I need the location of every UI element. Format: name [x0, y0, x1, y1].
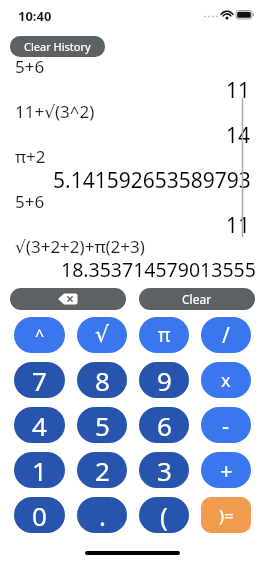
staticText: 0 [32, 498, 47, 533]
staticText: + [220, 455, 233, 485]
button[interactable]: 5 [77, 407, 127, 443]
button[interactable]: ( [139, 497, 189, 533]
button[interactable]: ^ [14, 317, 65, 353]
staticText: ( [160, 498, 168, 533]
button[interactable]: 5+6 [0, 55, 265, 100]
staticText: - [222, 410, 230, 440]
staticText: π [158, 322, 171, 348]
button[interactable]: 11+√(3^2) [0, 100, 265, 145]
button[interactable]: 0 [14, 497, 65, 533]
staticText: x [221, 368, 231, 393]
button[interactable]: 3 [139, 452, 189, 488]
staticText: Clear History [24, 39, 91, 54]
button[interactable]: 8 [77, 362, 127, 398]
button[interactable] [10, 288, 126, 310]
staticText: 1 [32, 453, 47, 488]
staticText: 9 [157, 363, 172, 398]
button[interactable]: . [77, 497, 127, 533]
button[interactable]: 5+6 [0, 190, 265, 235]
button[interactable]: )= [201, 497, 251, 533]
button[interactable]: 4 [14, 407, 65, 443]
button[interactable]: π+2 [0, 145, 265, 190]
staticText: √ [95, 322, 110, 348]
staticText: π+2 [15, 145, 46, 166]
button[interactable]: √ [77, 317, 127, 353]
staticText: 11+√(3^2) [15, 100, 95, 121]
staticText: Clear [182, 291, 212, 307]
button[interactable]: Clear [139, 288, 255, 310]
staticText: 11 [226, 76, 251, 100]
staticText: 8 [95, 363, 110, 398]
button[interactable]: π [139, 317, 189, 353]
staticText: 6 [157, 408, 172, 443]
staticText: 5 [95, 408, 110, 443]
staticText: 7 [32, 363, 47, 398]
button[interactable]: 6 [139, 407, 189, 443]
button[interactable]: Clear History [10, 36, 105, 57]
staticText: / [222, 321, 230, 350]
button[interactable]: √(3+2+2)+π(2+3) [0, 235, 265, 280]
button[interactable]: 7 [14, 362, 65, 398]
button[interactable]: 9 [139, 362, 189, 398]
staticText: 18.353714579013555 [61, 256, 256, 280]
staticText: 5+6 [15, 55, 45, 76]
button[interactable]: + [201, 452, 251, 488]
staticText: . [99, 498, 106, 533]
button[interactable]: 2 [77, 452, 127, 488]
staticText: 5.141592653589793 [53, 166, 251, 190]
button[interactable]: / [201, 317, 251, 353]
button[interactable]: 1 [14, 452, 65, 488]
staticText: 11 [226, 211, 251, 235]
staticText: )= [219, 504, 234, 527]
button[interactable]: - [201, 407, 251, 443]
staticText: 3 [157, 453, 172, 488]
staticText: 2 [95, 453, 110, 488]
staticText: 5+6 [15, 190, 45, 211]
staticText: √(3+2+2)+π(2+3) [15, 235, 145, 256]
button[interactable]: x [201, 362, 251, 398]
staticText: 4 [32, 408, 47, 443]
staticText: ^ [35, 324, 45, 346]
staticText: 10:40 [18, 7, 52, 25]
staticText: 14 [226, 121, 251, 145]
